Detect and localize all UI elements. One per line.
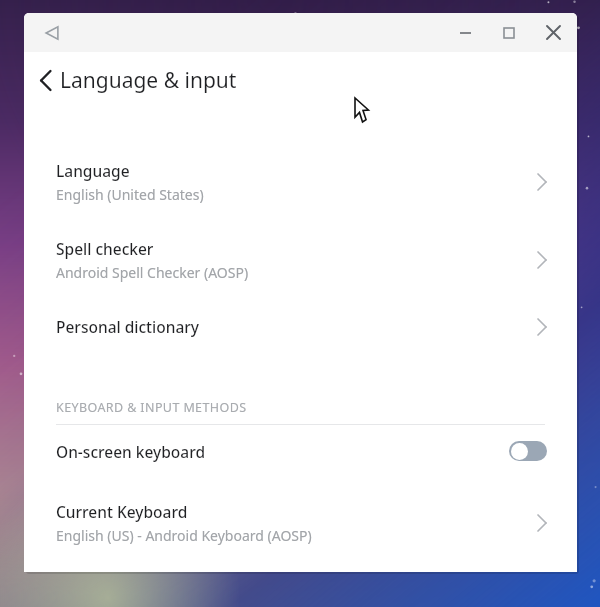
staticText: Language xyxy=(56,160,130,181)
button[interactable]: Language & input xyxy=(24,52,577,108)
button[interactable]: Personal dictionary xyxy=(24,312,577,341)
button[interactable]: Back xyxy=(30,13,74,52)
button[interactable]: Language xyxy=(24,156,577,208)
button[interactable]: Close xyxy=(531,13,575,52)
staticText: Android Spell Checker (AOSP) xyxy=(56,263,249,282)
button[interactable]: Spell checker xyxy=(24,234,577,286)
button[interactable]: On-screen keyboard xyxy=(24,425,577,477)
staticText: English (US) - Android Keyboard (AOSP) xyxy=(56,526,312,545)
button[interactable]: Minimize xyxy=(443,13,487,52)
staticText: KEYBOARD & INPUT METHODS xyxy=(56,399,247,416)
staticText: Personal dictionary xyxy=(56,316,200,337)
staticText: Current Keyboard xyxy=(56,501,188,522)
button[interactable]: Current Keyboard xyxy=(24,497,577,549)
button[interactable]: Maximize xyxy=(487,13,531,52)
staticText: English (United States) xyxy=(56,185,204,204)
staticText: On-screen keyboard xyxy=(56,441,509,462)
staticText: Language & input xyxy=(60,66,237,95)
staticText: Spell checker xyxy=(56,238,154,259)
